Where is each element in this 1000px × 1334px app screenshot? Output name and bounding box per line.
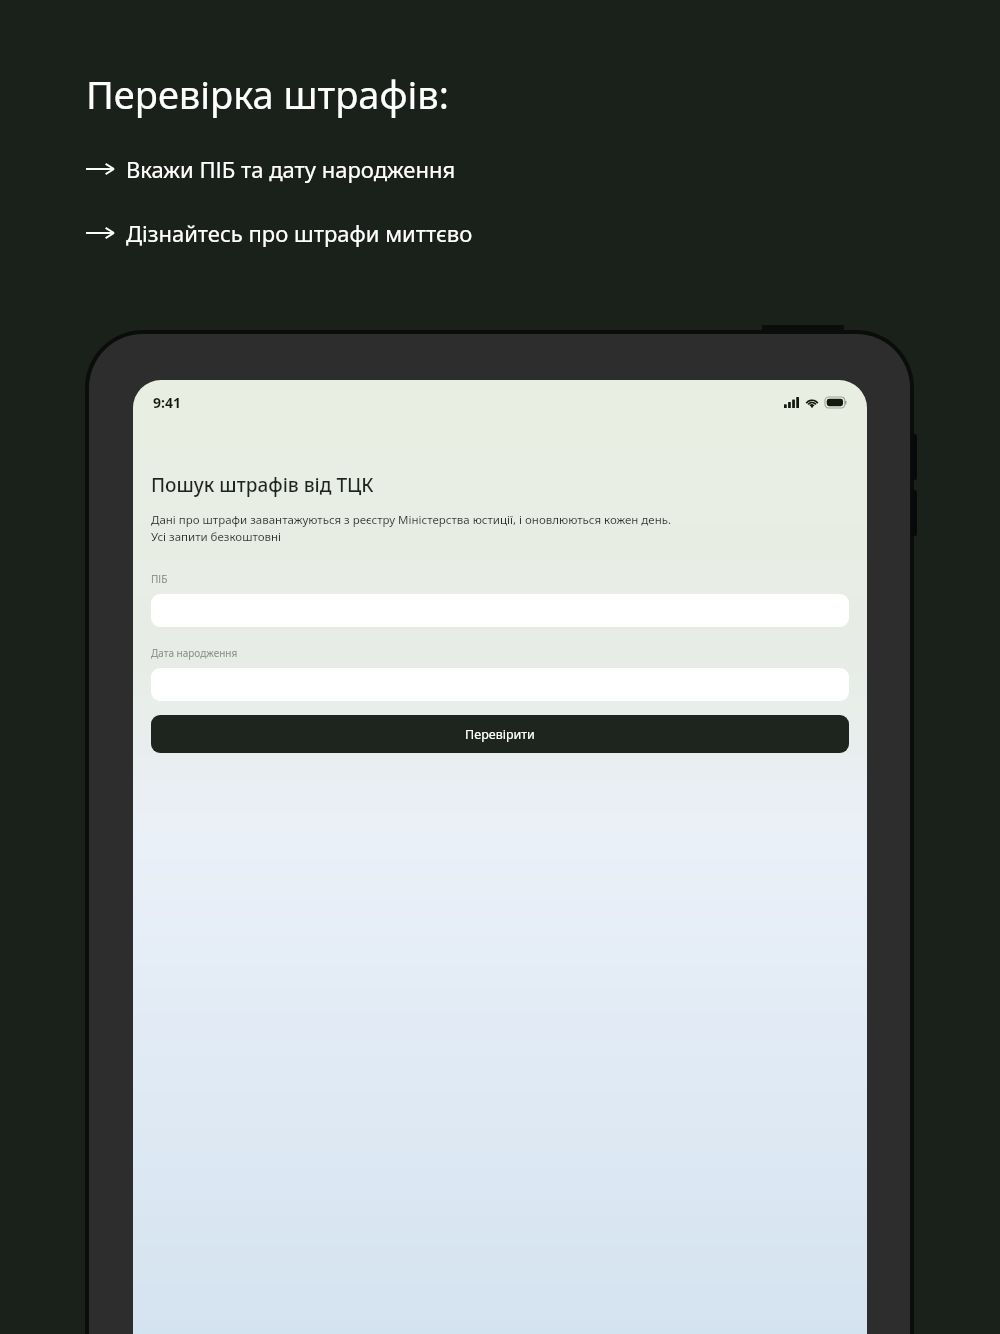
staticText: Дізнайтесь про штрафи миттєво bbox=[126, 218, 473, 248]
staticText: Пошук штрафів від ТЦК bbox=[151, 472, 374, 498]
staticText: Дата народження bbox=[151, 646, 238, 660]
staticText: Перевірити bbox=[465, 726, 535, 743]
staticText: 9:41 bbox=[153, 393, 181, 412]
button[interactable]: Перевірити bbox=[151, 715, 849, 753]
staticText: Дані про штрафи завантажуються з реєстру… bbox=[151, 512, 672, 544]
staticText: Перевірка штрафів: bbox=[86, 68, 449, 120]
staticText: Вкажи ПІБ та дату народження bbox=[126, 154, 456, 184]
staticText: ПІБ bbox=[151, 572, 168, 586]
